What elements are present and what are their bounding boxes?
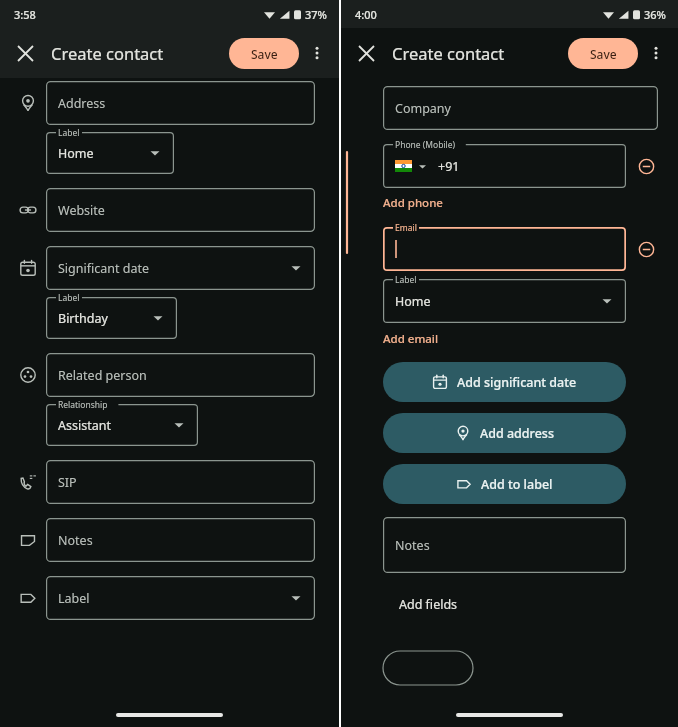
button[interactable]: Label [46,132,174,174]
button[interactable]: Label [46,297,177,339]
button[interactable]: Save [229,38,299,69]
staticText: SIP [58,474,303,491]
button[interactable]: Add to label [383,464,626,504]
staticText: +91 [438,158,614,175]
staticText: Add email [383,331,439,347]
staticText: Add address [480,425,554,442]
staticText: Label [58,292,80,304]
staticText: 4:00 [355,7,377,22]
button[interactable]: Close [349,36,383,70]
staticText: Notes [395,537,614,554]
staticText: Label [395,274,417,286]
button[interactable]: Email [383,227,626,271]
button[interactable]: Website [46,188,315,232]
staticText: 36% [644,7,666,22]
staticText: Label [58,590,289,607]
button[interactable]: Label [46,576,315,620]
staticText: Significant date [58,260,289,277]
staticText: Home [395,293,600,310]
button[interactable]: More options [301,37,333,69]
staticText: Birthday [58,310,151,327]
staticText: Home [58,145,148,162]
staticText: Create contact [51,42,164,64]
button[interactable]: Related person [46,353,315,397]
staticText: Create contact [392,42,505,64]
staticText: Relationship [58,399,108,411]
staticText: Related person [58,367,303,384]
button[interactable]: Remove phone [634,154,658,178]
staticText: Save [251,46,278,62]
button[interactable]: Add email [383,331,439,347]
staticText: 3:58 [14,7,36,22]
button[interactable]: Add fields [383,587,473,621]
staticText: 37% [305,7,327,22]
staticText: Add fields [399,596,458,613]
staticText: Address [58,95,303,112]
staticText: Add to label [481,476,553,493]
staticText: Website [58,202,303,219]
button[interactable]: Add address [383,413,626,453]
button[interactable]: Notes [46,518,315,562]
staticText: Label [58,127,80,139]
button[interactable]: Notes [383,517,626,573]
staticText: Phone (Mobile) [395,139,456,151]
staticText: Notes [58,532,303,549]
button[interactable]: Save [568,38,638,69]
button[interactable]: Phone (Mobile) [383,144,626,188]
button[interactable]: Remove email [634,237,658,261]
button[interactable]: Close [8,36,42,70]
staticText: Company [395,100,646,117]
staticText: Add phone [383,195,443,211]
staticText: Assistant [58,417,172,434]
staticText: Save [590,46,617,62]
button[interactable]: Company [383,86,658,130]
button[interactable]: SIP [46,460,315,504]
button[interactable]: Significant date [46,246,315,290]
button[interactable]: Address [46,81,315,125]
button[interactable]: Add significant date [383,362,626,402]
button[interactable]: Add phone [383,195,443,211]
staticText: Add significant date [457,374,577,391]
button[interactable]: Label [383,279,626,323]
button[interactable]: More options [640,37,672,69]
staticText: Email [395,222,417,234]
button[interactable]: Relationship [46,404,198,446]
